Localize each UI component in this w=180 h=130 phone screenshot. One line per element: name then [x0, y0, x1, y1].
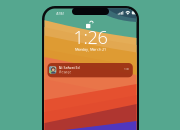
staticText: Message: [58, 70, 71, 74]
staticText: AT&T: [56, 11, 64, 16]
staticText: Monday, March 21: [75, 47, 106, 52]
button[interactable]: Ali Safwat Ed: [47, 63, 133, 77]
staticText: now: [124, 67, 129, 71]
staticText: Ali Safwat Ed: [58, 65, 79, 70]
staticText: 1:26: [73, 24, 107, 49]
